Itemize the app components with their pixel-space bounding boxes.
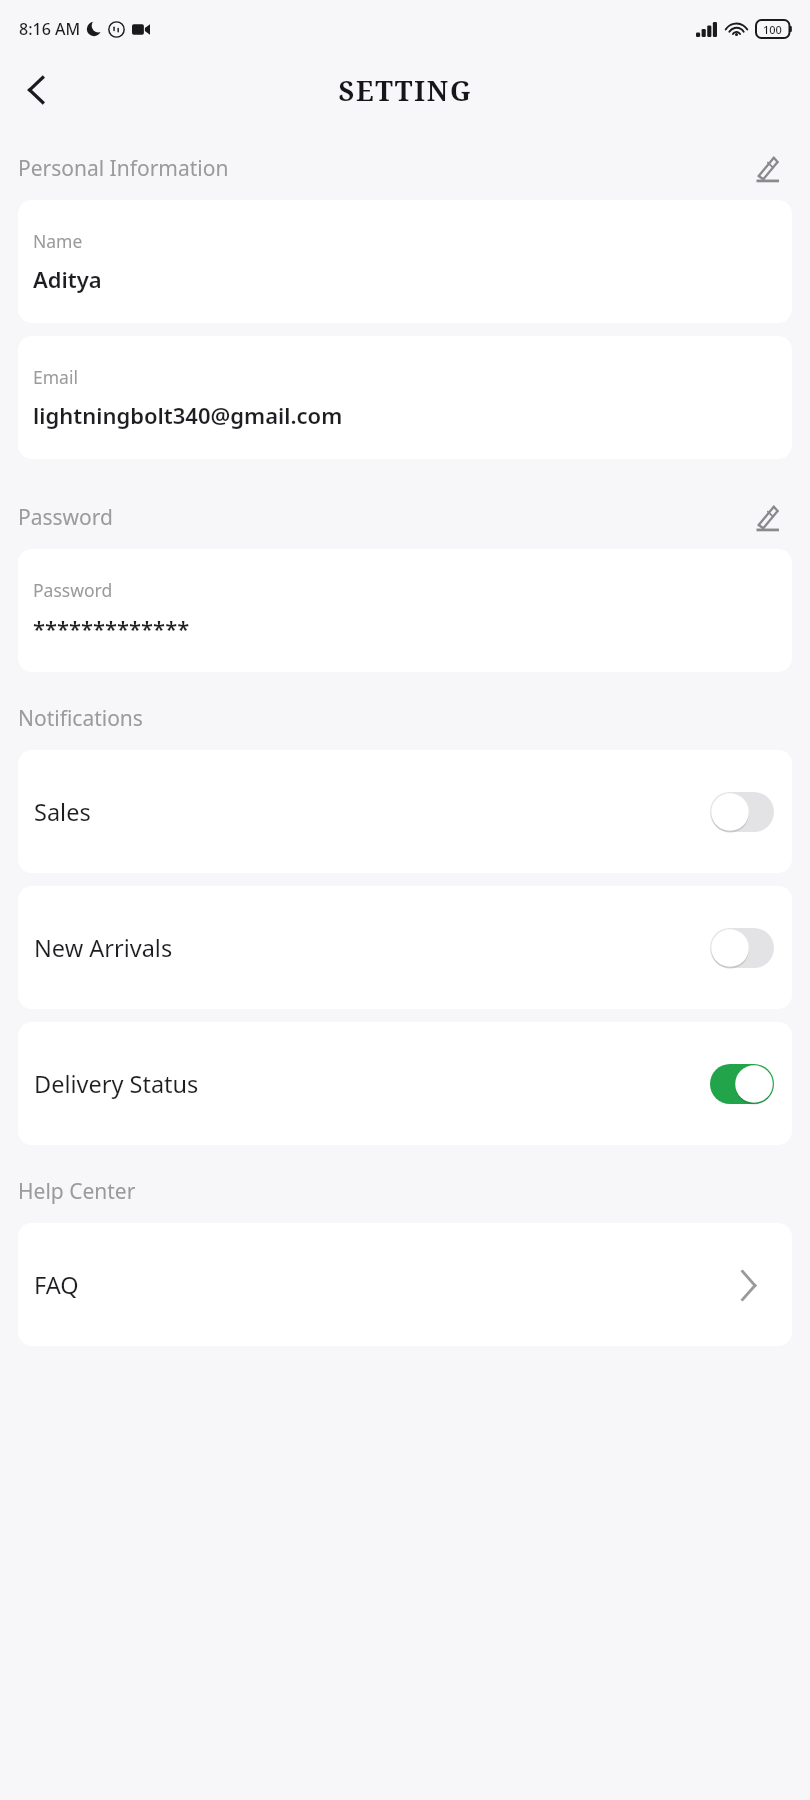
staticText: ************* <box>33 613 190 643</box>
staticText: FAQ <box>34 1269 730 1301</box>
staticText: Aditya <box>33 264 102 294</box>
button[interactable]: Open FAQ <box>730 1267 766 1303</box>
staticText: 8:16 AM <box>19 18 81 40</box>
button[interactable]: New Arrivals off <box>710 928 774 968</box>
staticText: Notifications <box>18 704 143 733</box>
staticText: Sales <box>34 796 710 828</box>
button[interactable]: FAQ <box>18 1223 792 1346</box>
staticText: Email <box>33 365 78 389</box>
button[interactable]: Delivery Status on <box>710 1064 774 1104</box>
staticText: Help Center <box>18 1177 136 1206</box>
button[interactable]: Back <box>10 64 62 116</box>
button[interactable]: Sales <box>18 750 792 873</box>
staticText: 100 <box>763 22 782 37</box>
staticText: Delivery Status <box>34 1068 710 1100</box>
staticText: lightningbolt340@gmail.com <box>33 400 343 430</box>
button[interactable]: Sales off <box>710 792 774 832</box>
staticText: Password <box>33 578 113 602</box>
staticText: Personal Information <box>18 154 229 183</box>
staticText: Password <box>18 503 113 532</box>
button[interactable]: Edit Password <box>746 495 792 539</box>
button[interactable]: New Arrivals <box>18 886 792 1009</box>
staticText: Name <box>33 229 83 253</box>
button[interactable]: Delivery Status <box>18 1022 792 1145</box>
staticText: New Arrivals <box>34 932 710 964</box>
staticText: SETTING <box>338 72 473 109</box>
button[interactable]: Edit Personal Information <box>746 146 792 190</box>
button[interactable]: Email <box>18 336 792 459</box>
button[interactable]: Name <box>18 200 792 323</box>
button[interactable]: Password <box>18 549 792 672</box>
